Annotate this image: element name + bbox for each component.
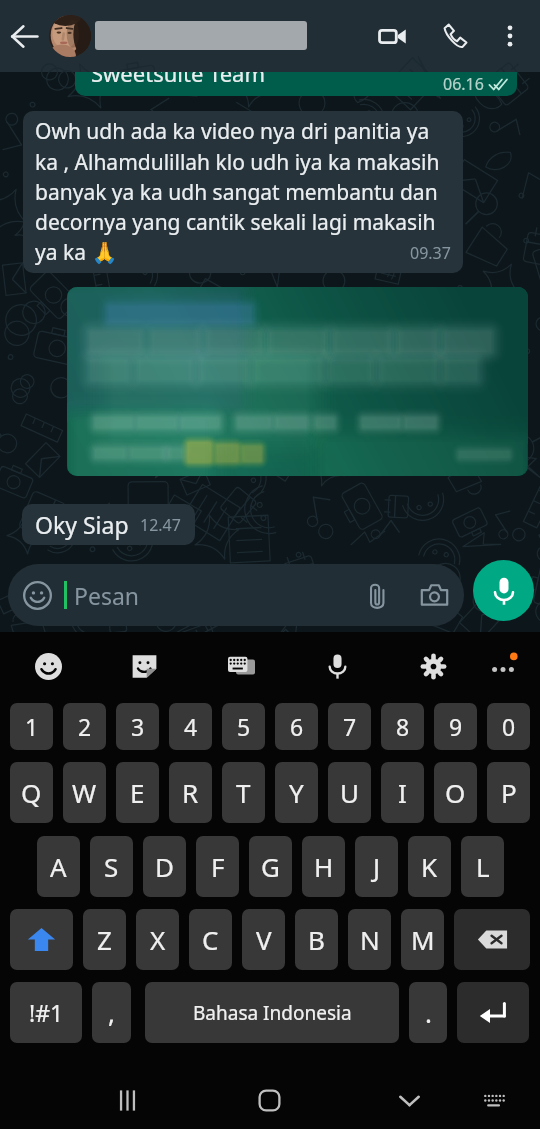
- staticText: Pesan: [74, 580, 140, 611]
- button[interactable]: Record voice message: [473, 560, 534, 621]
- button[interactable]: Shift: [10, 909, 73, 970]
- button[interactable]: Voice input: [315, 632, 359, 700]
- staticText: N: [360, 922, 380, 957]
- button[interactable]: Emoji: [26, 632, 70, 700]
- staticText: 06.16: [443, 73, 484, 95]
- staticText: D: [155, 849, 174, 884]
- button[interactable]: 2: [63, 703, 106, 750]
- button[interactable]: Profile photo: [49, 15, 91, 57]
- staticText: 7: [343, 711, 357, 742]
- staticText: 5: [237, 711, 251, 742]
- button[interactable]: K: [408, 836, 451, 897]
- staticText: S: [104, 849, 119, 884]
- staticText: Sweetsuite Team: [91, 72, 266, 82]
- staticText: R: [182, 775, 199, 810]
- button[interactable]: S: [90, 836, 133, 897]
- button[interactable]: L: [461, 836, 504, 897]
- button[interactable]: Backspace: [454, 909, 530, 970]
- staticText: P: [501, 775, 517, 810]
- button[interactable]: Back: [0, 0, 48, 72]
- button[interactable]: C: [189, 909, 232, 970]
- button[interactable]: .: [409, 982, 447, 1043]
- button[interactable]: 5: [222, 703, 265, 750]
- staticText: 3: [131, 711, 145, 742]
- staticText: J: [373, 849, 381, 884]
- staticText: L: [476, 849, 490, 884]
- staticText: 2: [78, 711, 92, 742]
- button[interactable]: Pesan: [8, 564, 464, 626]
- button[interactable]: 7: [328, 703, 371, 750]
- staticText: 09.37: [410, 242, 451, 264]
- button[interactable]: P: [487, 762, 530, 823]
- button[interactable]: 4: [169, 703, 212, 750]
- button[interactable]: V: [242, 909, 285, 970]
- button[interactable]: 6: [275, 703, 318, 750]
- button[interactable]: Video call: [368, 0, 416, 72]
- button[interactable]: X: [136, 909, 179, 970]
- button[interactable]: Voice call: [431, 0, 479, 72]
- button[interactable]: A: [37, 836, 80, 897]
- button[interactable]: D: [143, 836, 186, 897]
- button[interactable]: More keyboard options: [481, 632, 525, 700]
- button[interactable]: H: [302, 836, 345, 897]
- staticText: H: [314, 849, 334, 884]
- button[interactable]: B: [295, 909, 338, 970]
- button[interactable]: [67, 287, 528, 476]
- button[interactable]: Y: [275, 762, 318, 823]
- button[interactable]: Hide keyboard: [383, 1074, 435, 1126]
- button[interactable]: ,: [92, 982, 131, 1043]
- button[interactable]: E: [116, 762, 159, 823]
- button[interactable]: R: [169, 762, 212, 823]
- button[interactable]: T: [222, 762, 265, 823]
- button[interactable]: U: [328, 762, 371, 823]
- button[interactable]: O: [434, 762, 477, 823]
- staticText: X: [150, 922, 166, 957]
- staticText: I: [398, 775, 407, 810]
- staticText: K: [421, 849, 438, 884]
- button[interactable]: Change keyboard: [468, 1074, 520, 1126]
- button[interactable]: Keyboard modes: [219, 632, 263, 700]
- button[interactable]: !#1: [10, 982, 82, 1043]
- staticText: A: [50, 849, 67, 884]
- button[interactable]: Home: [243, 1074, 295, 1126]
- staticText: 9: [449, 711, 463, 742]
- button[interactable]: Q: [10, 762, 53, 823]
- button[interactable]: Owh udh ada ka video nya dri panitia ya …: [23, 111, 463, 273]
- button[interactable]: 8: [381, 703, 424, 750]
- button[interactable]: Bahasa Indonesia: [145, 982, 399, 1043]
- button[interactable]: Z: [83, 909, 126, 970]
- button[interactable]: N: [348, 909, 391, 970]
- button[interactable]: Recent apps: [101, 1074, 153, 1126]
- staticText: 0: [502, 711, 516, 742]
- button[interactable]: 0: [487, 703, 530, 750]
- button[interactable]: M: [401, 909, 444, 970]
- button[interactable]: G: [249, 836, 292, 897]
- staticText: F: [211, 849, 225, 884]
- button[interactable]: Stickers: [122, 632, 166, 700]
- button[interactable]: W: [63, 762, 106, 823]
- button[interactable]: J: [355, 836, 398, 897]
- button[interactable]: 1: [10, 703, 53, 750]
- button[interactable]: 9: [434, 703, 477, 750]
- staticText: B: [308, 922, 325, 957]
- staticText: Oky Siap: [35, 509, 129, 540]
- staticText: .: [425, 995, 432, 1030]
- button[interactable]: I: [381, 762, 424, 823]
- staticText: 1: [25, 711, 39, 742]
- staticText: C: [202, 922, 219, 957]
- staticText: Owh udh ada ka video nya dri panitia ya …: [35, 117, 451, 266]
- button[interactable]: Sweetsuite Team: [75, 72, 517, 96]
- button[interactable]: More options: [488, 0, 532, 72]
- staticText: U: [340, 775, 360, 810]
- staticText: Z: [97, 922, 112, 957]
- staticText: !#1: [29, 997, 64, 1028]
- button[interactable]: Enter: [457, 982, 529, 1043]
- button[interactable]: F: [196, 836, 239, 897]
- staticText: V: [256, 922, 272, 957]
- button[interactable]: [95, 21, 307, 50]
- staticText: Bahasa Indonesia: [193, 1000, 352, 1026]
- button[interactable]: Oky Siap: [22, 504, 195, 545]
- button[interactable]: Settings: [411, 632, 455, 700]
- staticText: 6: [290, 711, 304, 742]
- button[interactable]: 3: [116, 703, 159, 750]
